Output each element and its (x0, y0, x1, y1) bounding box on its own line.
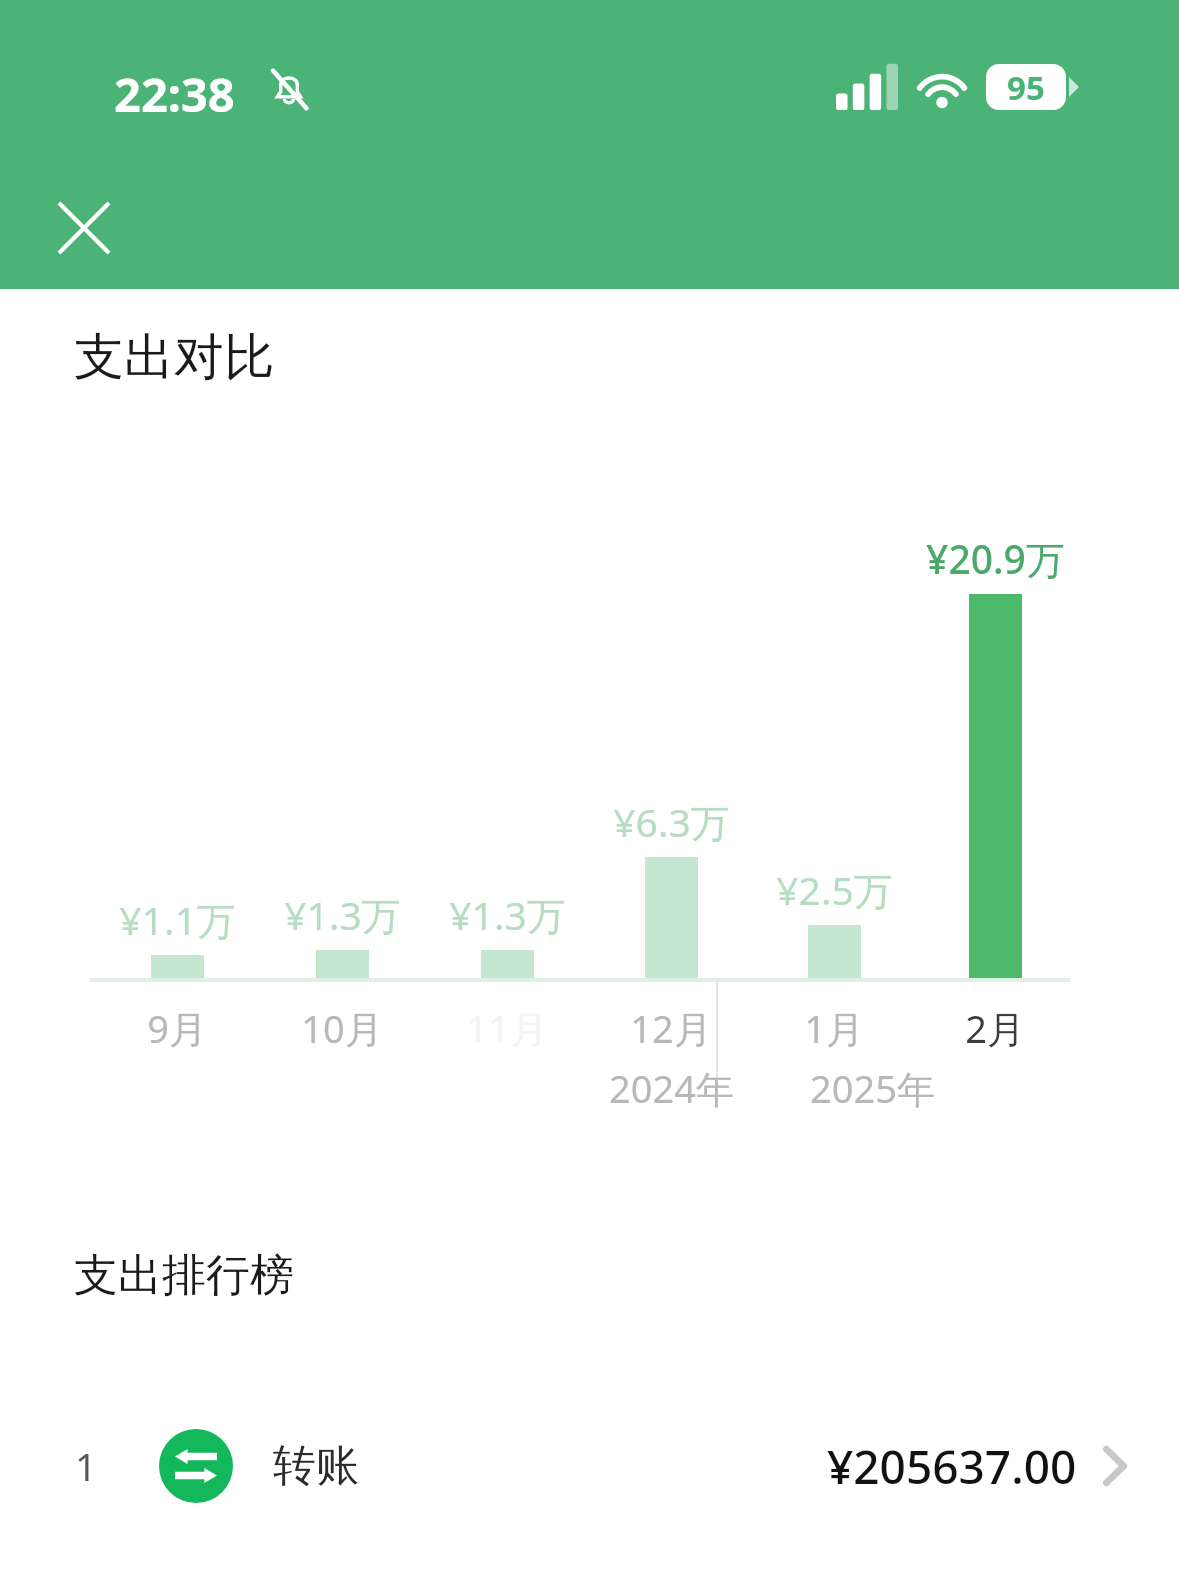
staticText: 95 (1007, 65, 1045, 110)
staticText: 22:38 (114, 62, 235, 126)
staticText: ¥6.3万 (613, 795, 730, 848)
button[interactable]: 1 (0, 1404, 1179, 1528)
staticText: ¥1.1万 (119, 893, 236, 946)
staticText: ¥205637.00 (827, 1435, 1077, 1498)
staticText: 1 (75, 1440, 97, 1492)
staticText: 1月 (804, 1002, 864, 1054)
staticText: 12月 (630, 1002, 712, 1054)
staticText: 9月 (147, 1002, 207, 1054)
staticText: ¥2.5万 (776, 863, 893, 916)
staticText: 2024年 (609, 1062, 734, 1114)
staticText: 11月 (466, 1002, 548, 1054)
staticText: 转账 (273, 1439, 359, 1493)
staticText: ¥1.3万 (284, 888, 401, 941)
button[interactable]: Close (39, 183, 129, 273)
staticText: 支出对比 (74, 326, 274, 389)
staticText: 支出排行榜 (74, 1248, 294, 1303)
staticText: 2月 (965, 1002, 1025, 1054)
staticText: ¥1.3万 (449, 888, 566, 941)
staticText: ¥20.9万 (926, 532, 1065, 585)
staticText: 2025年 (810, 1062, 935, 1114)
staticText: 10月 (301, 1002, 383, 1054)
